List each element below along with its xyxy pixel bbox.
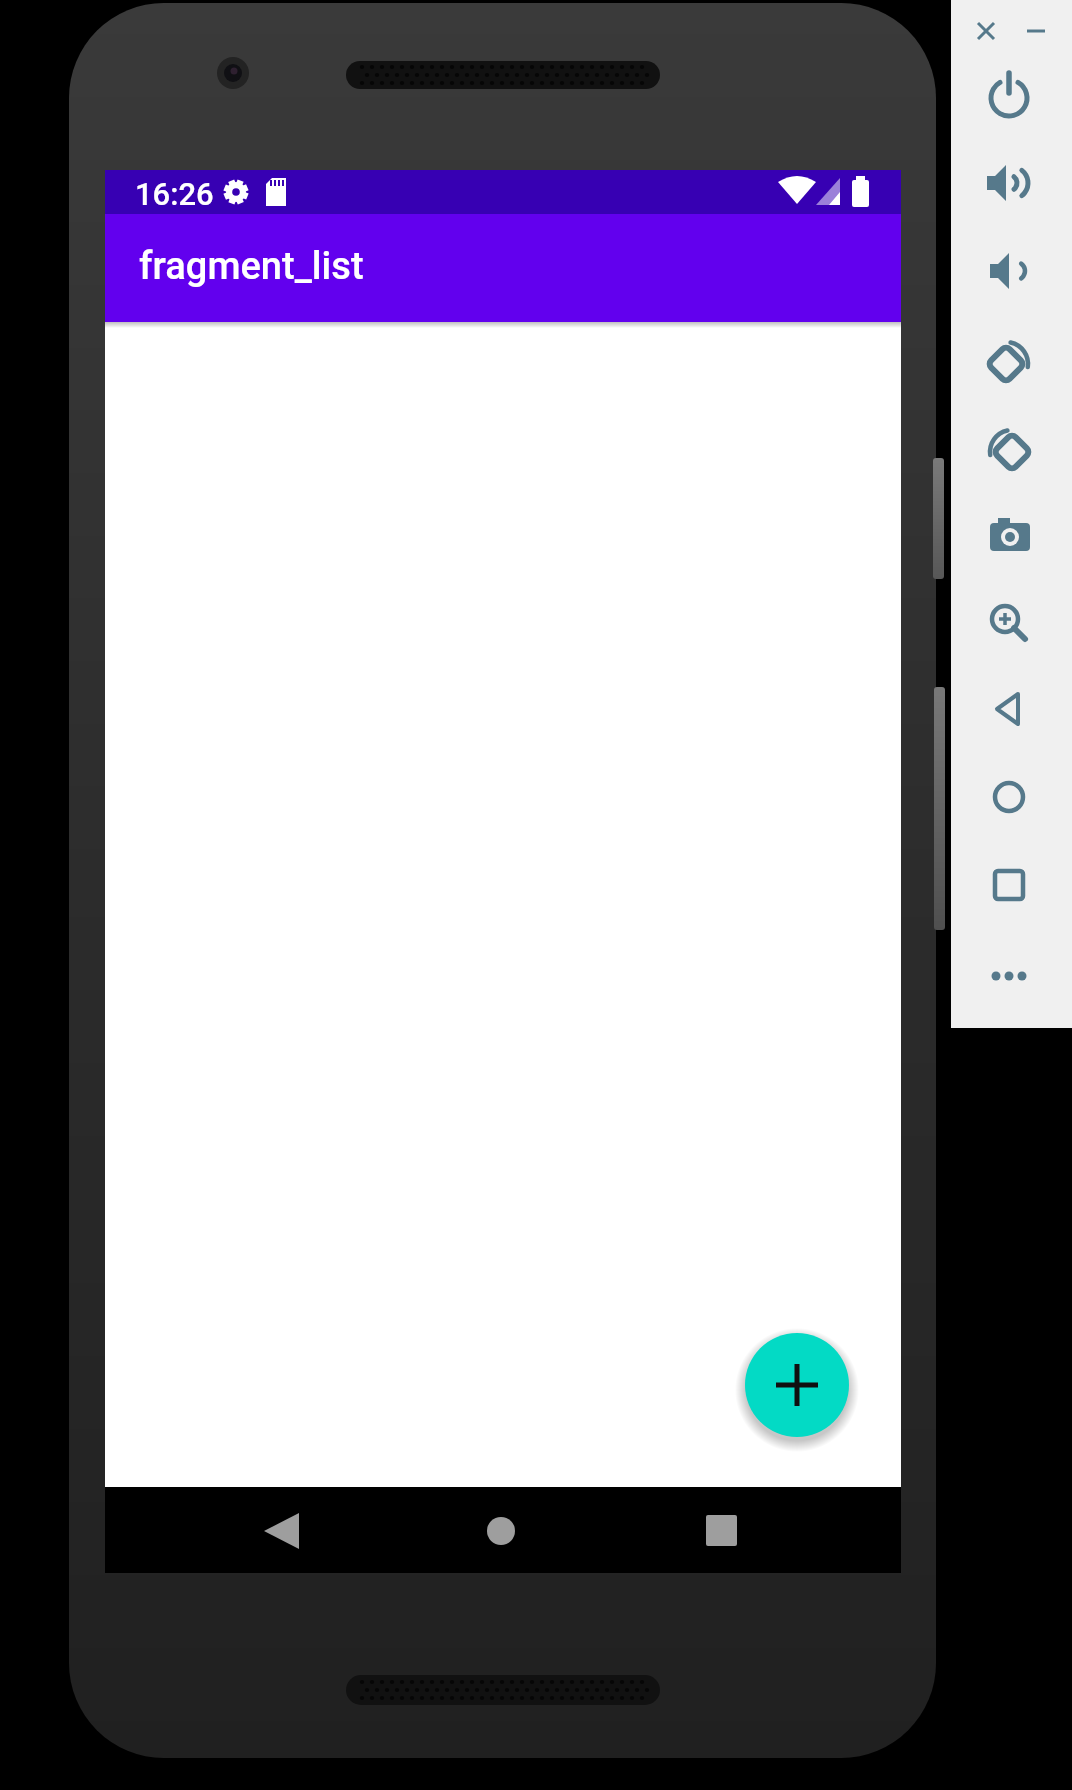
button[interactable] (982, 949, 1036, 1003)
button[interactable] (982, 156, 1036, 210)
button[interactable] (982, 770, 1036, 824)
button[interactable]: fragment_list (105, 214, 901, 322)
staticText: 16:26 (135, 176, 214, 212)
button[interactable] (982, 858, 1036, 912)
button[interactable] (239, 1491, 324, 1569)
button[interactable] (982, 69, 1036, 123)
button[interactable] (459, 1491, 544, 1569)
button[interactable] (745, 1333, 849, 1437)
button[interactable] (679, 1491, 764, 1569)
button[interactable] (1023, 18, 1049, 44)
button[interactable] (982, 244, 1036, 298)
button[interactable] (982, 507, 1036, 561)
staticText: fragment_list (139, 244, 364, 289)
button[interactable] (982, 420, 1036, 474)
button[interactable] (982, 596, 1036, 650)
button[interactable] (973, 18, 999, 44)
button[interactable] (982, 332, 1036, 386)
button[interactable] (982, 682, 1036, 736)
